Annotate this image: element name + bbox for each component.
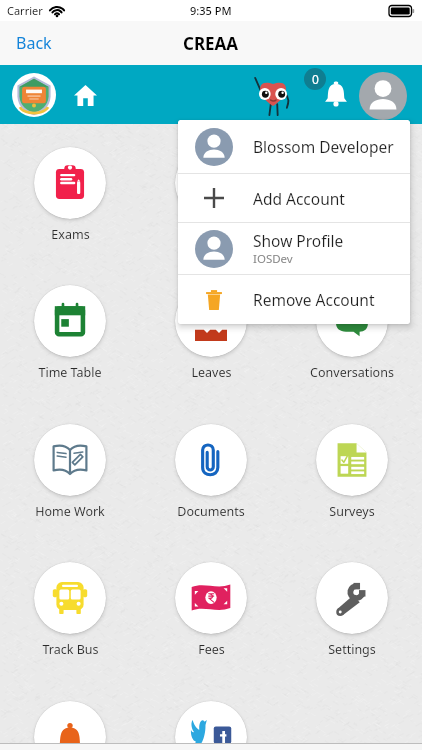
staticText: Surveys xyxy=(329,503,375,520)
button[interactable]: Notifications xyxy=(300,60,354,114)
staticText: Show Profile xyxy=(253,230,344,251)
staticText: IOSDev xyxy=(253,251,293,267)
button[interactable]: Time Table xyxy=(4,285,136,381)
button[interactable] xyxy=(4,701,136,750)
button[interactable]: Documents xyxy=(145,424,277,520)
button[interactable]: Show Profile xyxy=(178,223,410,274)
button[interactable]: Add Account xyxy=(178,174,410,222)
staticText: Exams xyxy=(51,226,90,243)
button[interactable]: Leaves xyxy=(145,285,277,381)
staticText: Documents xyxy=(177,503,245,520)
button[interactable]: Settings xyxy=(286,562,418,658)
button[interactable]: Home Work xyxy=(4,424,136,520)
button[interactable]: School logo xyxy=(12,73,56,117)
button[interactable]: Exams xyxy=(4,147,136,243)
button[interactable]: Rewards xyxy=(251,71,297,117)
button[interactable] xyxy=(145,701,277,750)
staticText: Track Bus xyxy=(42,641,99,658)
staticText: Back xyxy=(16,32,52,54)
staticText: Fees xyxy=(198,641,225,658)
button[interactable]: Conversations xyxy=(286,285,418,381)
staticText: Conversations xyxy=(310,364,394,381)
staticText: Remove Account xyxy=(253,289,375,310)
staticText: CREAA xyxy=(183,32,239,55)
staticText: Conversations xyxy=(310,226,394,243)
button[interactable]: Track Bus xyxy=(4,562,136,658)
staticText: Add Account xyxy=(253,188,345,209)
staticText: 0 xyxy=(312,71,319,87)
staticText: Time Table xyxy=(38,364,102,381)
button[interactable]: Profile xyxy=(359,72,407,120)
button[interactable]: Blossom Developer xyxy=(178,120,410,173)
staticText: Leaves xyxy=(191,226,232,243)
button[interactable]: Conversations xyxy=(286,147,418,243)
button[interactable]: Surveys xyxy=(286,424,418,520)
staticText: Blossom Developer xyxy=(253,136,394,157)
staticText: 9:35 PM xyxy=(190,3,232,18)
staticText: Home Work xyxy=(35,503,105,520)
button[interactable]: Back xyxy=(0,24,66,62)
button[interactable]: Remove Account xyxy=(178,275,410,324)
staticText: Settings xyxy=(328,641,376,658)
button[interactable]: Leaves xyxy=(145,147,277,243)
staticText: Carrier xyxy=(7,3,43,18)
button[interactable]: Fees xyxy=(145,562,277,658)
button[interactable]: Home xyxy=(66,76,104,114)
staticText: Leaves xyxy=(191,364,232,381)
